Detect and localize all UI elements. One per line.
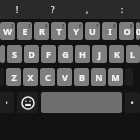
button[interactable]: I	[102, 22, 117, 40]
button[interactable]: O	[119, 22, 134, 40]
button[interactable]: C	[40, 68, 55, 86]
staticText: !	[16, 4, 19, 15]
button[interactable]: :	[105, 0, 140, 19]
button[interactable]: A	[0, 45, 5, 63]
staticText: X	[27, 71, 34, 83]
button[interactable]: T	[51, 22, 66, 40]
button[interactable]: X	[23, 68, 38, 86]
button[interactable]: J	[92, 45, 107, 63]
staticText: F	[46, 48, 51, 60]
staticText: :	[121, 4, 124, 15]
button[interactable]: ,	[70, 0, 105, 19]
staticText: 3	[28, 23, 31, 29]
button[interactable]: Period	[125, 92, 140, 113]
button[interactable]: ?	[35, 0, 70, 19]
button[interactable]: N	[91, 68, 106, 86]
staticText: R	[39, 25, 45, 37]
staticText: 9	[130, 23, 133, 29]
staticText: B	[79, 71, 85, 83]
button[interactable]: B	[74, 68, 89, 86]
staticText: M	[111, 71, 120, 83]
staticText: 7	[96, 23, 99, 29]
staticText: 0	[136, 25, 140, 37]
staticText: G	[62, 48, 69, 60]
staticText: Z	[11, 71, 17, 83]
staticText: 8	[113, 23, 116, 29]
button[interactable]: F	[41, 45, 56, 63]
button[interactable]: !	[0, 0, 35, 19]
staticText: K	[114, 48, 120, 60]
button[interactable]: U	[85, 22, 100, 40]
staticText: J	[98, 48, 101, 60]
button[interactable]: S	[7, 45, 22, 63]
staticText: C	[45, 71, 51, 83]
button[interactable]: W	[0, 22, 15, 40]
button[interactable]: Space	[41, 92, 122, 113]
button[interactable]: Emoji	[17, 92, 38, 113]
staticText: N	[95, 71, 103, 83]
button[interactable]: Y	[68, 22, 83, 40]
staticText: ,	[86, 4, 89, 15]
button[interactable]: M	[108, 68, 123, 86]
staticText: W	[3, 25, 12, 37]
staticText: V	[62, 71, 68, 83]
staticText: ?	[51, 4, 55, 15]
staticText: 6	[79, 23, 82, 29]
staticText: H	[79, 48, 86, 60]
staticText: 5	[62, 23, 65, 29]
staticText: S	[12, 48, 17, 60]
button[interactable]: Symbols	[0, 92, 14, 113]
button[interactable]: R	[34, 22, 49, 40]
button[interactable]: E	[17, 22, 32, 40]
staticText: T	[56, 25, 62, 37]
staticText: 4	[45, 23, 48, 29]
button[interactable]: V	[57, 68, 72, 86]
staticText: E	[22, 25, 28, 37]
button[interactable]: H	[75, 45, 90, 63]
staticText: D	[28, 48, 35, 60]
button[interactable]: G	[58, 45, 73, 63]
button[interactable]: L	[126, 45, 140, 63]
staticText: 2	[11, 23, 14, 29]
button[interactable]: K	[109, 45, 124, 63]
staticText: I	[108, 25, 112, 37]
staticText: O	[123, 25, 131, 37]
staticText: U	[89, 25, 96, 37]
staticText: L	[130, 48, 136, 60]
button[interactable]: 0	[136, 22, 140, 40]
button[interactable]: Z	[6, 68, 21, 86]
button[interactable]: D	[24, 45, 39, 63]
staticText: Y	[73, 25, 79, 37]
